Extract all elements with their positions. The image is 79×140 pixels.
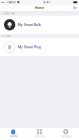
staticText: My Smart Plug — [18, 45, 41, 49]
staticText: Home — [10, 135, 17, 138]
staticText: Living Room — [2, 12, 15, 15]
staticText: Settings — [61, 135, 71, 138]
button[interactable]: Settings — [53, 128, 79, 140]
button[interactable]: My Smart Plug — [0, 38, 79, 56]
button[interactable]: Add accessory — [72, 5, 78, 11]
staticText: 9:41 — [43, 1, 49, 4]
staticText: Carrier — [7, 1, 16, 4]
button[interactable]: Rooms — [26, 128, 53, 140]
staticText: Kitchen — [2, 34, 10, 37]
staticText: Home — [35, 6, 44, 10]
button[interactable]: My Smart Bulb — [0, 16, 79, 34]
button[interactable]: Home — [0, 128, 26, 140]
staticText: Rooms — [35, 135, 44, 138]
staticText: My Smart Bulb — [18, 23, 41, 27]
